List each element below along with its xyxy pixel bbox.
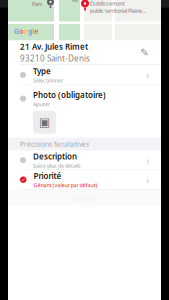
staticText: public territorial Plaine… [90,7,146,14]
staticText: Type [33,66,51,76]
staticText: Photo (obligatoire) [33,89,106,100]
button[interactable]: Prendre une photo [33,111,56,134]
staticText: Établissement [90,0,125,7]
staticText: Sélectionner [33,77,63,84]
button[interactable]: Fermer [12,0,34,8]
staticText: Ajouter [63,0,106,8]
staticText: Ajouter [33,101,50,108]
staticText: 21 Av. Jules Rimet [20,41,88,52]
staticText: o [24,27,28,35]
staticText: › [146,153,149,167]
staticText: ✓ [21,177,25,183]
staticText: o [19,27,23,35]
button[interactable]: Description [8,151,161,170]
staticText: Rue [72,0,78,3]
staticText: Priorité [33,171,61,181]
button[interactable]: Type [8,65,161,85]
staticText: Parc [32,0,43,8]
staticText: › [146,68,149,82]
staticText: g [28,27,32,35]
staticText: Gênant (valeur par défaut) [33,182,97,189]
staticText: ▣ [39,115,50,129]
staticText: ✎ [140,46,149,58]
button[interactable]: 21 Av. Jules Rimet [8,40,161,64]
staticText: 93210 Saint-Denis [20,53,90,64]
staticText: e [34,27,38,35]
staticText: Saisir plus de détails [33,162,81,169]
button[interactable]: ✓ [8,170,161,189]
staticText: l [32,27,34,35]
staticText: Description [33,151,77,162]
staticText: Précisions facultatives [20,140,89,149]
staticText: G [14,27,19,35]
staticText: › [146,173,149,187]
